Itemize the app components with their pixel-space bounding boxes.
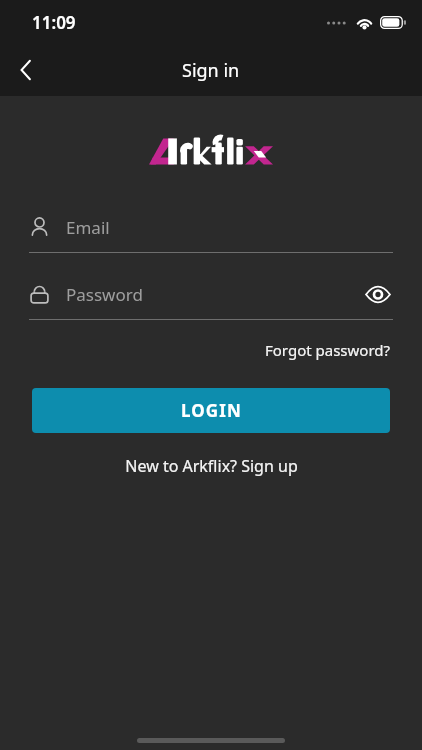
button[interactable]: Show password (363, 279, 393, 309)
staticText: LOGIN (181, 399, 242, 422)
staticText: Email (66, 216, 110, 239)
staticText: Password (66, 283, 143, 306)
staticText: Forgot password? (265, 340, 391, 360)
button[interactable]: Forgot password? (263, 338, 393, 362)
button[interactable]: LOGIN (32, 388, 390, 433)
staticText: 11:09 (32, 11, 76, 34)
staticText: Sign in (182, 58, 240, 83)
button[interactable]: Back (0, 44, 52, 96)
button[interactable]: Password (29, 276, 393, 320)
button[interactable]: Email (29, 209, 393, 253)
button[interactable]: New to Arkflix? Sign up (117, 451, 306, 481)
staticText: New to Arkflix? Sign up (125, 455, 298, 477)
